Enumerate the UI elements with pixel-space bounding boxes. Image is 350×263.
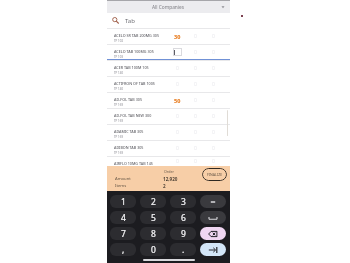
button[interactable]: 0 bbox=[204, 28, 222, 44]
staticText: 0 bbox=[212, 65, 215, 72]
button[interactable]: ACELO TAB 100MG 305 bbox=[107, 44, 230, 60]
button[interactable]: 0 bbox=[204, 140, 222, 156]
button[interactable]: 0 bbox=[186, 60, 204, 76]
staticText: 0 bbox=[194, 65, 197, 72]
button[interactable]: 30 bbox=[168, 28, 186, 44]
staticText: 0 bbox=[194, 129, 197, 136]
staticText: ADIBON TAB 305 bbox=[114, 145, 144, 150]
button[interactable]: All Companies bbox=[107, 1, 230, 13]
staticText: ACELO SR TAB 200MG 305 bbox=[114, 33, 160, 38]
button[interactable]: 0 bbox=[186, 76, 204, 92]
staticText: TP 103 bbox=[114, 55, 124, 59]
staticText: 0 bbox=[176, 113, 179, 120]
button[interactable]: 0 bbox=[168, 60, 186, 76]
staticText: 50 bbox=[174, 97, 181, 104]
button[interactable]: 5 bbox=[140, 211, 166, 224]
button[interactable]: . bbox=[170, 243, 196, 256]
staticText: FINALIZE bbox=[207, 172, 223, 177]
staticText: 0 bbox=[212, 97, 215, 104]
staticText: 0 bbox=[176, 129, 179, 136]
staticText: ACELO TAB 100MG 305 bbox=[114, 49, 154, 54]
button[interactable]: 0 bbox=[186, 156, 204, 166]
button[interactable]: back bbox=[200, 227, 226, 240]
staticText: AIRFLO 10MG TAB 14S bbox=[114, 161, 153, 166]
staticText: TP 169 bbox=[114, 151, 124, 155]
staticText: 5 bbox=[151, 212, 156, 224]
button[interactable]: 0 bbox=[168, 156, 186, 166]
button[interactable]: 2 bbox=[140, 195, 166, 208]
button[interactable]: 8 bbox=[140, 227, 166, 240]
staticText: 2 bbox=[163, 183, 166, 189]
staticText: 0 bbox=[194, 33, 197, 40]
staticText: 1 bbox=[121, 196, 126, 208]
button[interactable]: 1 bbox=[110, 195, 136, 208]
button[interactable]: AD-FOL TAB 305 bbox=[107, 92, 230, 108]
button[interactable]: 0 bbox=[204, 92, 222, 108]
button[interactable]: 0 bbox=[186, 140, 204, 156]
staticText: , bbox=[122, 244, 125, 256]
staticText: 0 bbox=[194, 113, 197, 120]
staticText: 12,920 bbox=[163, 176, 178, 182]
button[interactable]: 0 bbox=[168, 76, 186, 92]
button[interactable]: , bbox=[110, 243, 136, 256]
staticText: ACER TAB 100M 105 bbox=[114, 65, 149, 70]
button[interactable]: 0 bbox=[186, 108, 204, 124]
button[interactable]: AD-FOL TAB NEW 300 bbox=[107, 108, 230, 124]
staticText: 0 bbox=[176, 65, 179, 72]
button[interactable]: 0 bbox=[140, 243, 166, 256]
staticText: 6 bbox=[181, 212, 186, 224]
button[interactable]: 0 bbox=[204, 44, 222, 60]
button[interactable]: next bbox=[200, 243, 226, 256]
staticText: 0 bbox=[212, 129, 215, 136]
button[interactable]: space bbox=[200, 211, 226, 224]
staticText: 3 bbox=[181, 196, 186, 208]
staticText: 0 bbox=[194, 81, 197, 88]
staticText: TP 169 bbox=[114, 103, 124, 107]
staticText: 0 bbox=[212, 49, 215, 56]
button[interactable]: 0 bbox=[168, 108, 186, 124]
staticText: TP 140 bbox=[114, 87, 124, 91]
staticText: 0 bbox=[212, 33, 215, 40]
staticText: Tab bbox=[125, 17, 135, 25]
button[interactable]: 0 bbox=[168, 124, 186, 140]
staticText: 0 bbox=[212, 145, 215, 152]
button[interactable]: 7 bbox=[110, 227, 136, 240]
button[interactable]: 0 bbox=[186, 92, 204, 108]
button[interactable]: ADIBON TAB 305 bbox=[107, 140, 230, 156]
staticText: 7 bbox=[121, 228, 126, 240]
staticText: TP 102 bbox=[114, 39, 124, 43]
staticText: 0 bbox=[151, 244, 156, 256]
button[interactable]: Tab bbox=[107, 13, 230, 28]
button[interactable]: 6 bbox=[170, 211, 196, 224]
button[interactable]: 3 bbox=[170, 195, 196, 208]
staticText: Order bbox=[164, 169, 174, 174]
button[interactable]: minus bbox=[200, 195, 226, 208]
button[interactable]: 9 bbox=[170, 227, 196, 240]
staticText: 2 bbox=[151, 196, 156, 208]
button[interactable]: AIRFLO 10MG TAB 14S bbox=[107, 156, 230, 166]
button[interactable]: 0 bbox=[204, 76, 222, 92]
staticText: 0 bbox=[194, 49, 197, 56]
button[interactable]: 0 bbox=[204, 108, 222, 124]
button[interactable]: 4 bbox=[110, 211, 136, 224]
button[interactable]: 0 bbox=[204, 124, 222, 140]
button[interactable]: FINALIZE bbox=[202, 168, 227, 181]
button[interactable]: 0 bbox=[204, 60, 222, 76]
staticText: All Companies bbox=[152, 4, 185, 11]
staticText: 0 bbox=[212, 158, 215, 165]
button[interactable]: ACER TAB 100M 105 bbox=[107, 60, 230, 76]
button[interactable]: ACTIFRON OF TAB 100S bbox=[107, 76, 230, 92]
button[interactable]: 50 bbox=[168, 92, 186, 108]
button[interactable] bbox=[168, 44, 186, 60]
button[interactable]: ACELO SR TAB 200MG 305 bbox=[107, 28, 230, 44]
button[interactable]: 0 bbox=[186, 28, 204, 44]
button[interactable]: 0 bbox=[186, 124, 204, 140]
button[interactable]: 0 bbox=[204, 156, 222, 166]
staticText: 4 bbox=[121, 212, 126, 224]
button[interactable]: 0 bbox=[186, 44, 204, 60]
staticText: 8 bbox=[151, 228, 156, 240]
button[interactable]: ADAMIC TAB 305 bbox=[107, 124, 230, 140]
staticText: Items bbox=[115, 183, 127, 189]
button[interactable]: 0 bbox=[168, 140, 186, 156]
staticText: ADAMIC TAB 305 bbox=[114, 129, 144, 134]
